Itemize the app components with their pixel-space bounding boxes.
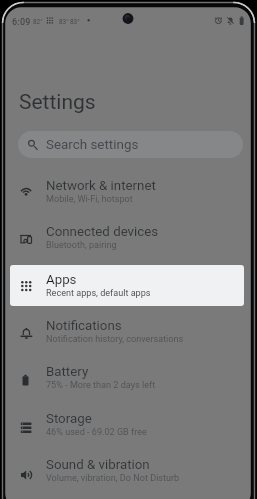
button[interactable]: [6, 355, 250, 400]
staticText: Connected devices: [46, 224, 159, 240]
staticText: Notification history, conversations: [46, 334, 184, 345]
button[interactable]: [6, 448, 250, 493]
staticText: 46% used - 69.02 GB free: [46, 427, 147, 438]
staticText: Bluetooth, pairing: [46, 240, 117, 251]
staticText: 6:09: [12, 17, 31, 28]
staticText: Sound & vibration: [46, 457, 150, 473]
staticText: 83°: [59, 18, 69, 26]
staticText: 83°: [70, 18, 80, 26]
staticText: Battery: [46, 364, 89, 380]
staticText: Recent apps, default apps: [46, 288, 151, 299]
button[interactable]: [6, 263, 250, 308]
staticText: Storage: [46, 411, 92, 427]
staticText: Volume, vibration, Do Not Disturb: [46, 473, 180, 484]
staticText: 82°: [33, 18, 43, 26]
button[interactable]: [10, 265, 244, 306]
staticText: Mobile, Wi-Fi, hotspot: [46, 194, 133, 205]
staticText: Network & internet: [46, 178, 156, 194]
button[interactable]: [18, 131, 243, 158]
staticText: Search settings: [46, 137, 139, 153]
button[interactable]: [6, 215, 250, 260]
staticText: Apps: [46, 272, 77, 288]
staticText: 75% - More than 2 days left: [46, 380, 156, 391]
button[interactable]: [6, 309, 250, 354]
button[interactable]: [6, 401, 250, 446]
staticText: Settings: [19, 90, 96, 115]
button[interactable]: [6, 169, 250, 214]
staticText: Notifications: [46, 318, 122, 334]
